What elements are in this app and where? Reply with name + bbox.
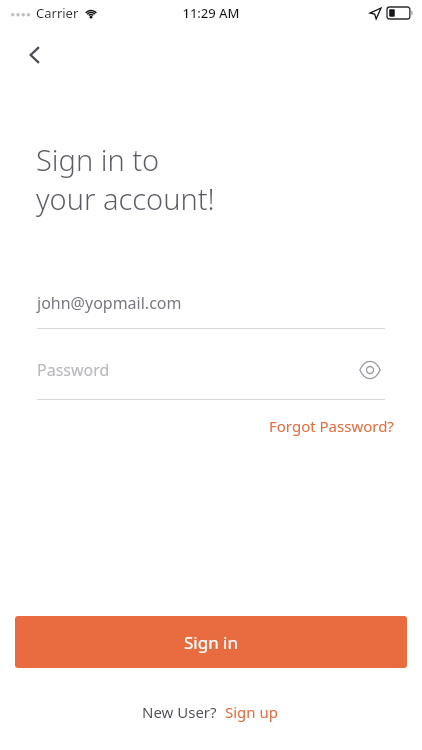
staticText: Password [37, 359, 355, 381]
staticText: Sign in to [36, 140, 160, 179]
staticText: Sign up [225, 702, 278, 722]
staticText: Sign in [184, 631, 238, 654]
button[interactable]: Sign up [223, 698, 280, 726]
staticText: john@yopmail.com [37, 292, 385, 314]
staticText: your account! [36, 179, 215, 218]
button[interactable]: john@yopmail.com [37, 292, 385, 329]
button[interactable]: Password [37, 355, 385, 400]
staticText: New User? [142, 702, 217, 722]
staticText: Forgot Password? [269, 416, 394, 436]
button[interactable]: Forgot Password? [267, 412, 396, 440]
staticText: 11:29 AM [182, 4, 240, 22]
button[interactable]: Show password [355, 355, 385, 385]
staticText: Carrier [36, 4, 79, 22]
button[interactable]: Sign in [15, 616, 407, 668]
button[interactable]: Back [12, 32, 58, 78]
